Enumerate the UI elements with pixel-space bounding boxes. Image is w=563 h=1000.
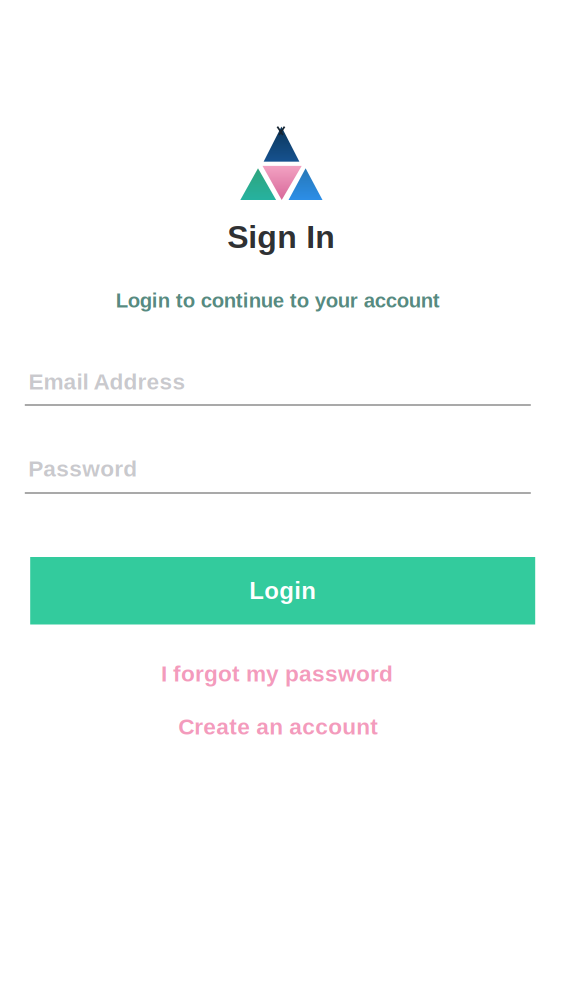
staticText: Create an account (178, 714, 378, 739)
button[interactable]: Login (30, 557, 535, 624)
button[interactable]: Create an account (178, 714, 378, 739)
staticText: Login to continue to your account (116, 289, 440, 312)
staticText: Password (28, 456, 137, 481)
button[interactable]: I forgot my password (161, 661, 393, 686)
staticText: Email Address (29, 369, 186, 394)
staticText: Sign In (227, 219, 335, 255)
staticText: I forgot my password (161, 661, 393, 686)
staticText: Login (249, 577, 316, 604)
